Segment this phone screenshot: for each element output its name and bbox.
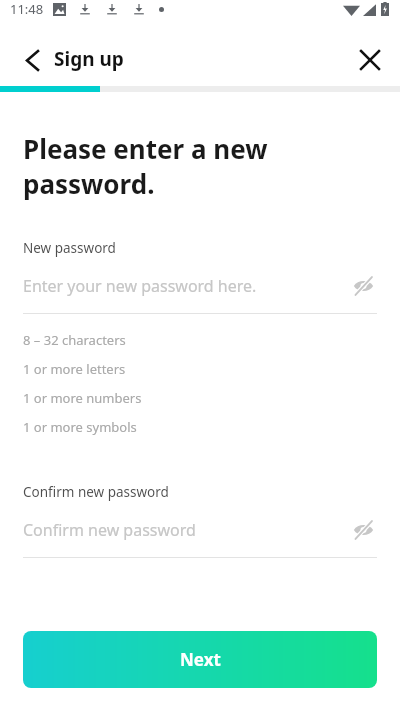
staticText: Confirm new password bbox=[23, 483, 169, 501]
staticText: Confirm new password bbox=[23, 519, 196, 541]
staticText: password. bbox=[23, 166, 155, 201]
staticText: Enter your new password here. bbox=[23, 275, 257, 297]
button[interactable]: Confirm new password bbox=[23, 517, 377, 543]
staticText: 1 or more symbols bbox=[23, 418, 137, 436]
button[interactable]: Close bbox=[349, 39, 391, 81]
staticText: 1 or more letters bbox=[23, 360, 126, 378]
button[interactable]: Next bbox=[23, 631, 377, 688]
staticText: New password bbox=[23, 239, 116, 257]
staticText: 11:48 bbox=[10, 0, 44, 18]
staticText: 1 or more numbers bbox=[23, 389, 142, 407]
staticText: Sign up bbox=[54, 46, 124, 72]
button[interactable]: Enter your new password here. bbox=[23, 273, 377, 299]
button[interactable]: Back bbox=[11, 39, 53, 81]
button[interactable]: Show password bbox=[349, 517, 377, 543]
staticText: Please enter a new bbox=[23, 131, 268, 166]
staticText: 8 – 32 characters bbox=[23, 331, 126, 349]
staticText: Next bbox=[180, 648, 221, 671]
button[interactable]: Show password bbox=[349, 273, 377, 299]
